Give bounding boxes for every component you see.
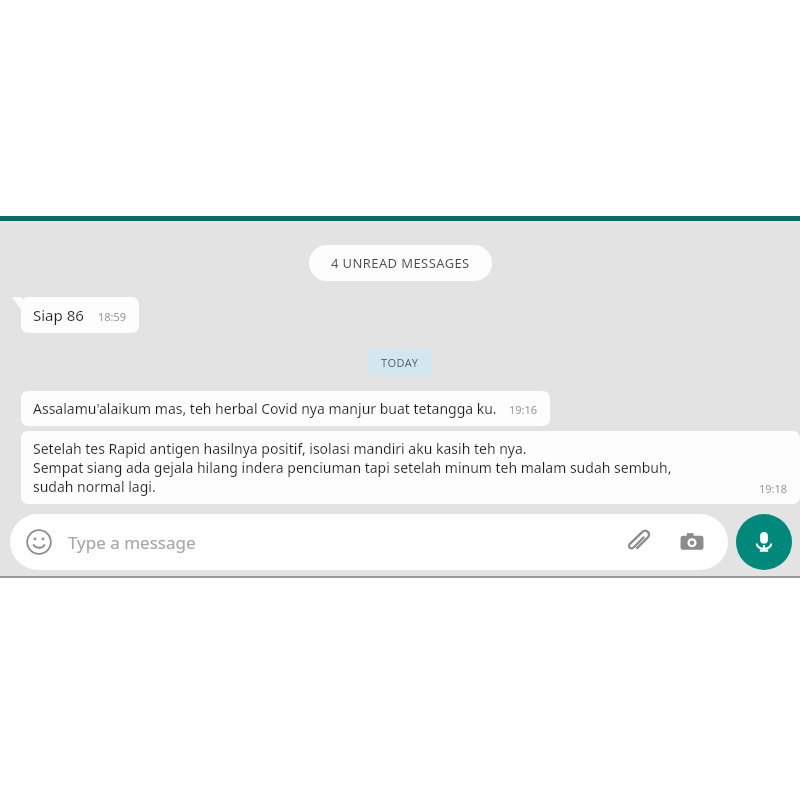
staticText: 19:18	[759, 481, 788, 496]
staticText: 19:16	[509, 402, 538, 417]
staticText: sudah normal lagi.	[33, 477, 156, 496]
button[interactable]: Emoji	[10, 514, 728, 570]
staticText: 4 UNREAD MESSAGES	[331, 254, 470, 272]
staticText: Sempat siang ada gejala hilang indera pe…	[33, 458, 672, 477]
button[interactable]: Voice message	[736, 514, 792, 570]
staticText: Setelah tes Rapid antigen hasilnya posit…	[33, 439, 527, 458]
staticText: 18:59	[98, 309, 127, 324]
button[interactable]: Setelah tes Rapid antigen hasilnya posit…	[21, 431, 800, 504]
staticText: Siap 86	[33, 305, 84, 325]
button[interactable]: Attach	[618, 522, 658, 562]
button[interactable]: Emoji	[22, 525, 56, 559]
button[interactable]: Camera	[672, 522, 712, 562]
button[interactable]: Siap 86	[21, 297, 139, 333]
button[interactable]: Assalamu'alaikum mas, teh herbal Covid n…	[21, 391, 550, 426]
staticText: TODAY	[381, 355, 419, 370]
button[interactable]: 4 UNREAD MESSAGES	[309, 245, 492, 281]
staticText: Type a message	[68, 531, 196, 554]
staticText: Assalamu'alaikum mas, teh herbal Covid n…	[33, 399, 497, 418]
